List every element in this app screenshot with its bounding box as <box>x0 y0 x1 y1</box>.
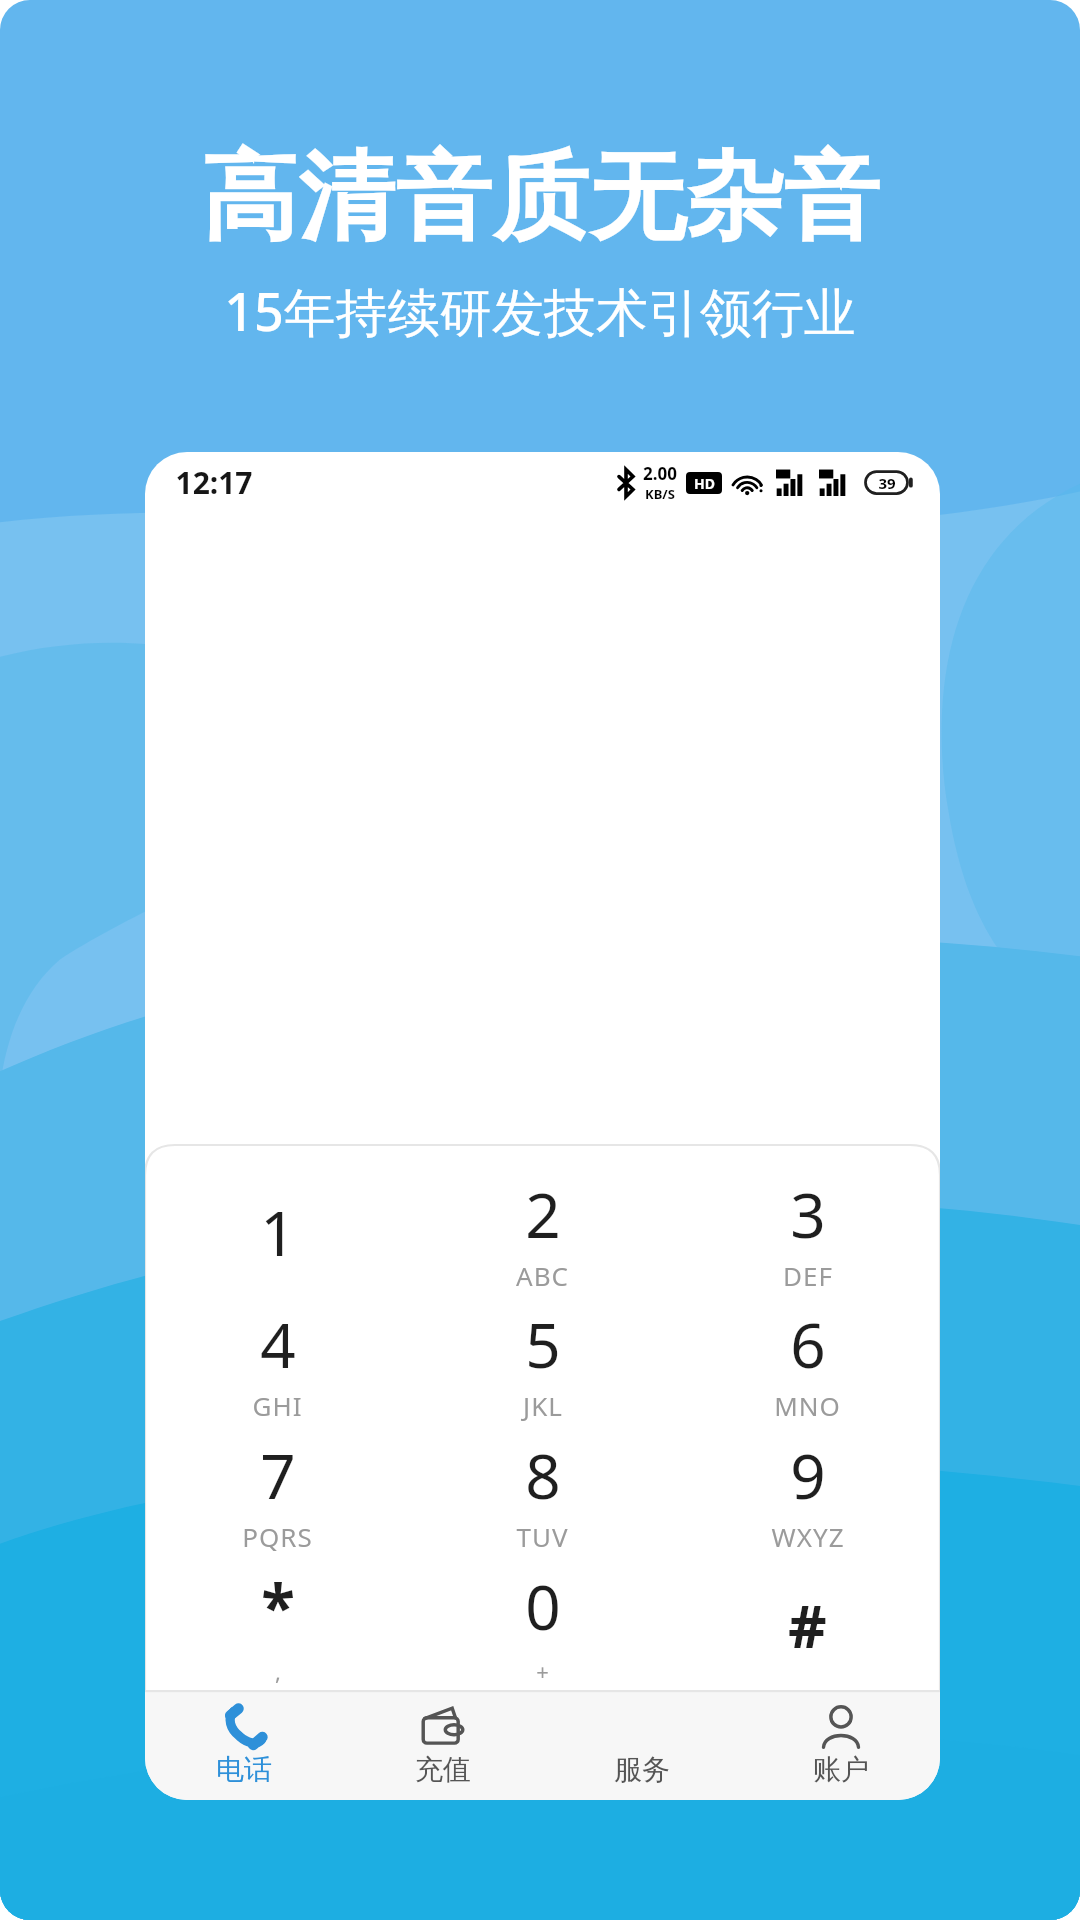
button[interactable]: # <box>675 1559 940 1690</box>
staticText: 8 <box>525 1433 561 1517</box>
button[interactable]: 8 <box>410 1428 675 1559</box>
staticText: DEF <box>783 1258 833 1293</box>
staticText: 6 <box>790 1302 826 1386</box>
staticText: 服务 <box>614 1752 670 1787</box>
button[interactable]: 0 <box>410 1559 675 1690</box>
staticText: 12:17 <box>175 462 253 503</box>
button[interactable]: 账户 <box>741 1690 940 1800</box>
staticText: 3 <box>790 1172 826 1256</box>
button[interactable]: 6 <box>675 1297 940 1428</box>
staticText: 充值 <box>415 1752 471 1787</box>
button[interactable]: 1 <box>145 1167 410 1297</box>
button[interactable]: 7 <box>145 1428 410 1559</box>
staticText: ABC <box>516 1258 569 1293</box>
staticText: 15年持续研发技术引领行业 <box>224 275 856 346</box>
staticText: 2 <box>525 1172 561 1256</box>
staticText: 电话 <box>216 1752 272 1787</box>
button[interactable]: * <box>145 1559 410 1690</box>
staticText: 1 <box>260 1190 296 1274</box>
staticText: WXYZ <box>771 1519 845 1554</box>
button[interactable]: 充值 <box>343 1690 542 1800</box>
staticText: 4 <box>260 1302 296 1386</box>
staticText: HD <box>694 474 715 493</box>
staticText: KB/S <box>645 485 675 503</box>
button[interactable]: 9 <box>675 1428 940 1559</box>
staticText: GHI <box>252 1388 303 1423</box>
staticText: 39 <box>878 473 896 493</box>
staticText: 2.00 <box>643 462 677 485</box>
staticText: JKL <box>523 1388 563 1423</box>
staticText: , <box>275 1656 282 1686</box>
staticText: 0 <box>525 1564 561 1648</box>
button[interactable]: 2 <box>410 1167 675 1297</box>
button[interactable]: 3 <box>675 1167 940 1297</box>
button[interactable]: 服务 <box>542 1690 741 1800</box>
staticText: 账户 <box>813 1752 869 1787</box>
staticText: 高清音质无杂音 <box>201 138 880 259</box>
staticText: + <box>536 1656 550 1686</box>
staticText: 9 <box>790 1433 826 1517</box>
staticText: # <box>788 1584 827 1666</box>
staticText: MNO <box>774 1388 841 1423</box>
button[interactable]: 4 <box>145 1297 410 1428</box>
button[interactable]: 电话 <box>145 1690 343 1800</box>
staticText: 5 <box>525 1302 561 1386</box>
staticText: TUV <box>516 1519 569 1554</box>
staticText: PQRS <box>242 1519 313 1554</box>
staticText: * <box>261 1564 295 1648</box>
button[interactable]: 5 <box>410 1297 675 1428</box>
staticText: 7 <box>260 1433 296 1517</box>
